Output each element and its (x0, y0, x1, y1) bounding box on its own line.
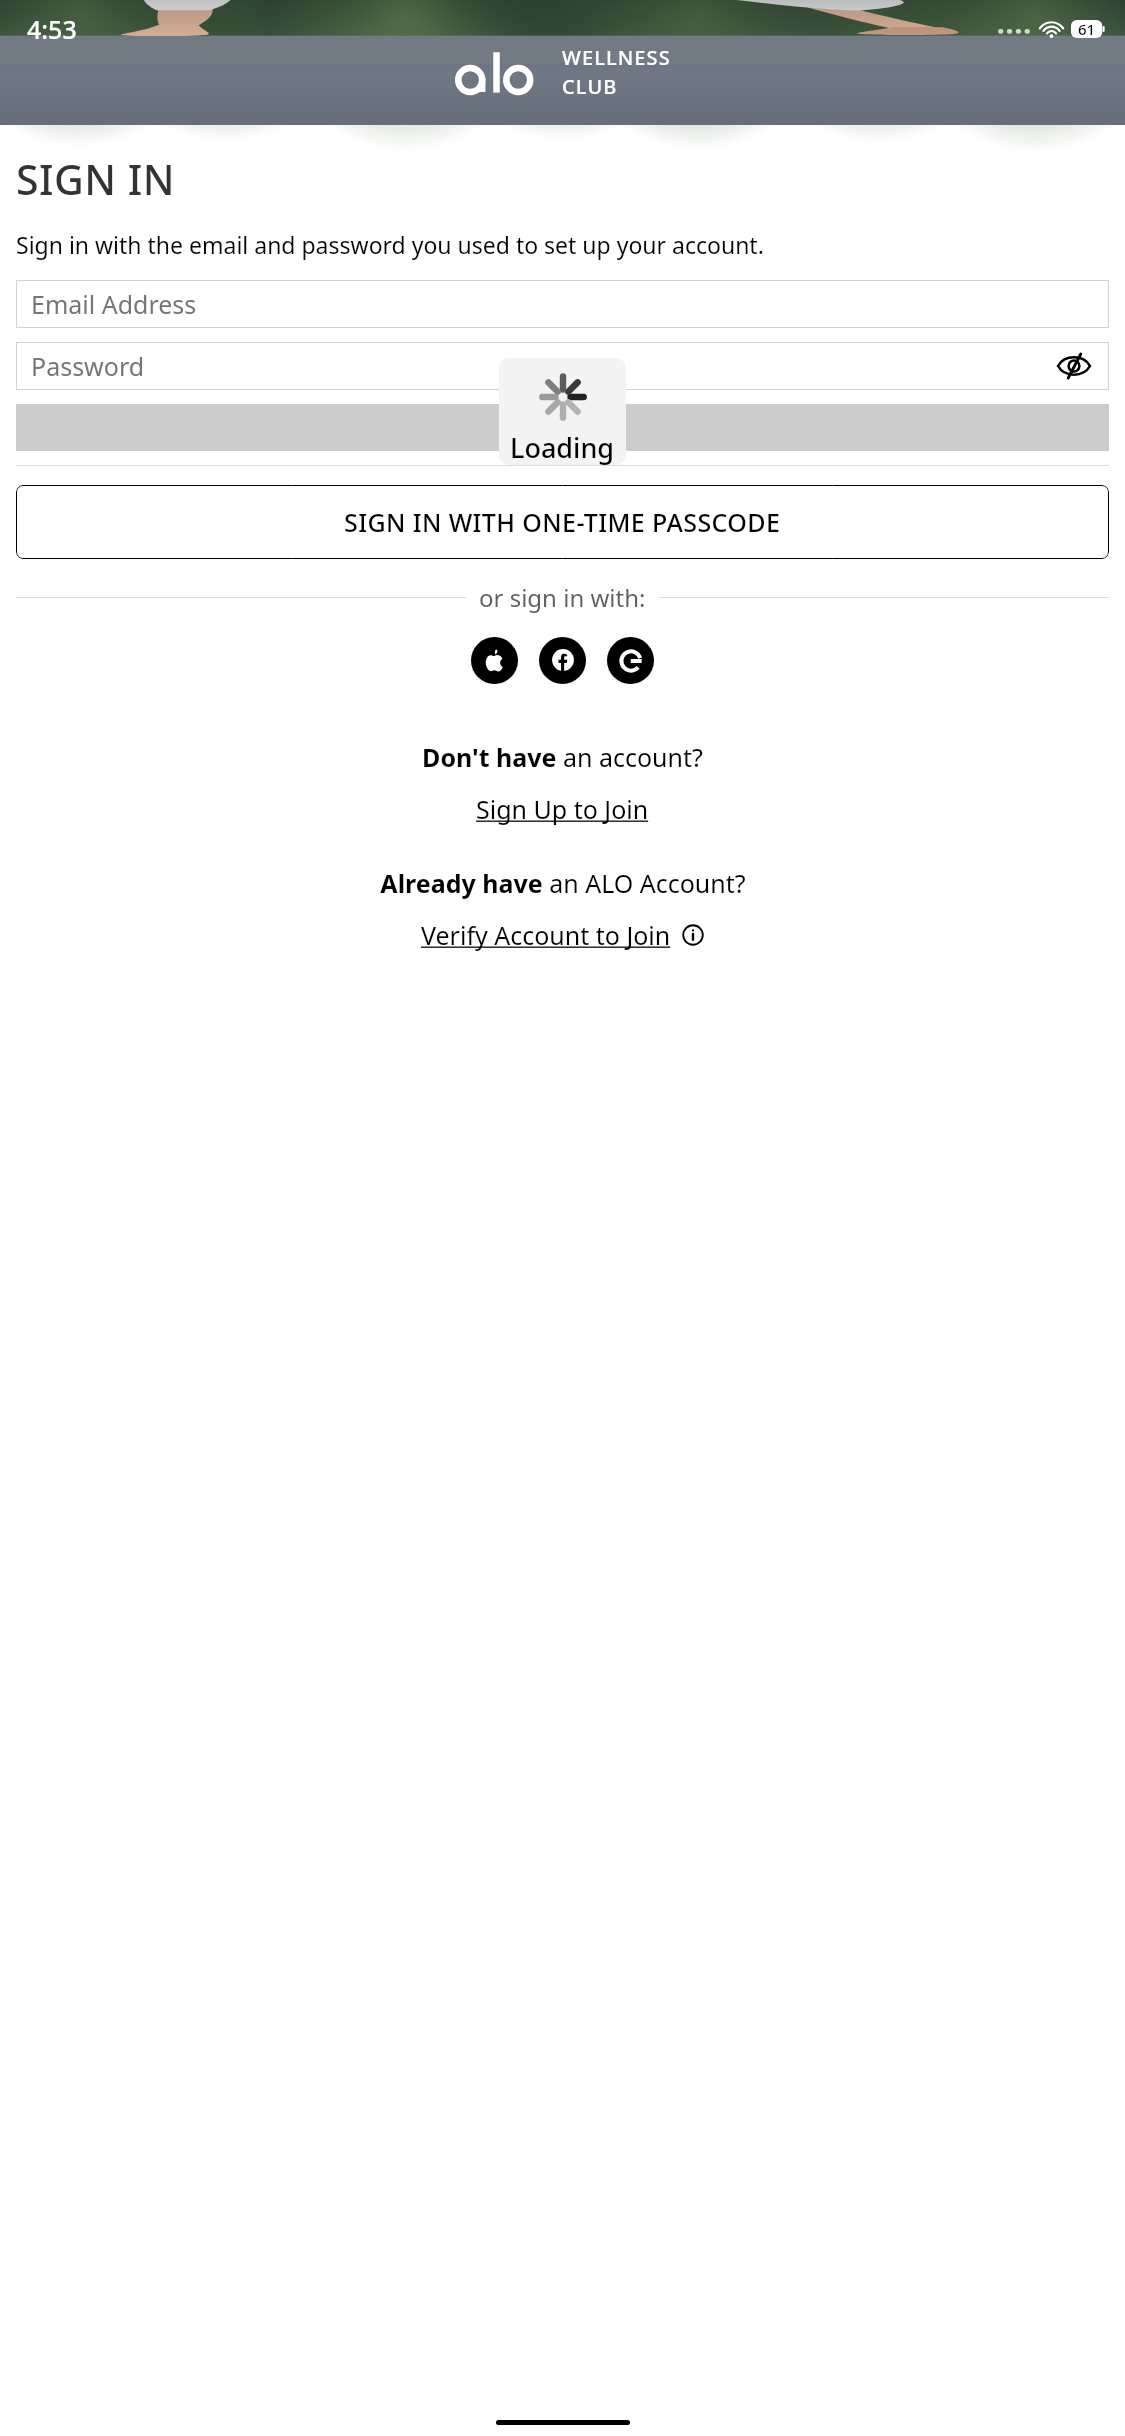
button[interactable]: SIGN IN WITH ONE-TIME PASSCODE (16, 485, 1109, 559)
staticText: Loading (510, 429, 615, 465)
button[interactable]: Sign in with Google (607, 637, 654, 684)
staticText: 4:53 (27, 12, 77, 46)
button[interactable]: Email Address (16, 280, 1109, 328)
staticText: SIGN IN (16, 151, 176, 207)
staticText: 61 (1078, 19, 1096, 39)
staticText: WELLNESS (562, 44, 671, 71)
staticText: Password (31, 349, 145, 383)
button[interactable]: Sign Up to Join (470, 790, 655, 828)
staticText: Don't have an account? (422, 740, 703, 774)
button[interactable]: Verify Account to Join (415, 916, 710, 954)
staticText: Sign Up to Join (476, 792, 649, 826)
button[interactable] (16, 404, 1109, 451)
staticText: or sign in with: (479, 581, 646, 614)
button[interactable]: Sign in with Facebook (539, 637, 586, 684)
staticText: Verify Account to Join (421, 918, 671, 952)
staticText: Email Address (31, 287, 197, 321)
staticText: Sign in with the email and password you … (16, 229, 1109, 260)
staticText: CLUB (562, 73, 618, 100)
button[interactable]: Show password (1053, 345, 1095, 387)
staticText: Already have an ALO Account? (380, 866, 746, 900)
staticText: SIGN IN WITH ONE-TIME PASSCODE (344, 505, 781, 539)
button[interactable]: Password (16, 342, 1109, 390)
button[interactable]: Sign in with Apple (471, 637, 518, 684)
